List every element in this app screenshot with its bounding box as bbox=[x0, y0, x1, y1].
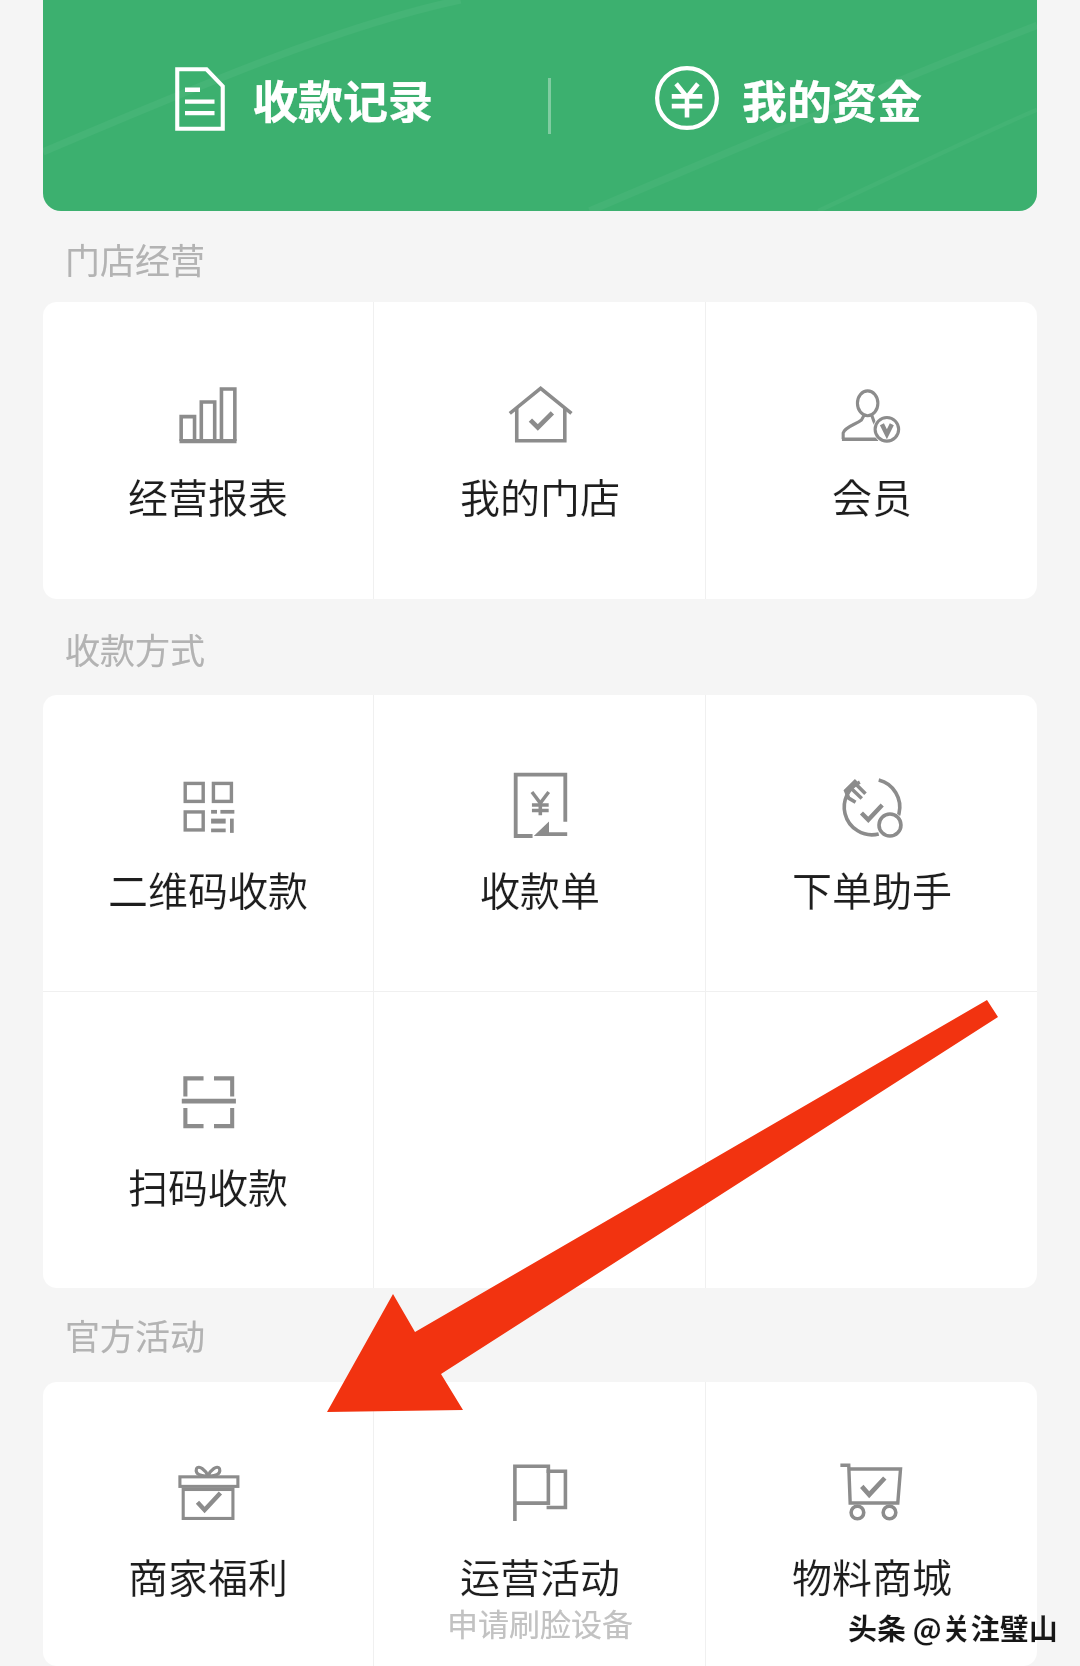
button[interactable]: 二维码收款 bbox=[43, 695, 373, 991]
button[interactable]: 会员 bbox=[706, 302, 1037, 599]
button[interactable]: 我的资金 bbox=[551, 0, 1037, 211]
staticText: 商家福利 bbox=[128, 1547, 288, 1605]
staticText: 收款记录 bbox=[253, 67, 434, 132]
staticText: 我的门店 bbox=[460, 467, 620, 525]
button[interactable]: 我的门店 bbox=[374, 302, 705, 599]
button[interactable]: 收款单 bbox=[374, 695, 705, 991]
button[interactable]: 运营活动 bbox=[374, 1382, 705, 1666]
staticText: 门店经营 bbox=[65, 233, 206, 284]
button[interactable]: 商家福利 bbox=[43, 1382, 373, 1666]
button[interactable]: 经营报表 bbox=[43, 302, 373, 599]
button[interactable]: 扫码收款 bbox=[43, 992, 373, 1288]
staticText: 收款方式 bbox=[65, 623, 206, 674]
staticText: 二维码收款 bbox=[108, 860, 308, 918]
staticText: 申请刷脸设备 bbox=[447, 1600, 633, 1645]
staticText: 下单助手 bbox=[792, 860, 952, 918]
button[interactable]: 下单助手 bbox=[706, 695, 1037, 991]
staticText: 头条 @关注璧山 bbox=[848, 1606, 1058, 1648]
staticText: 扫码收款 bbox=[128, 1157, 288, 1215]
staticText: 会员 bbox=[832, 467, 912, 525]
staticText: 运营活动 bbox=[460, 1547, 620, 1605]
staticText: 物料商城 bbox=[792, 1547, 952, 1605]
staticText: 经营报表 bbox=[128, 467, 288, 525]
staticText: 收款单 bbox=[480, 860, 600, 918]
button[interactable]: 物料商城 bbox=[706, 1382, 1037, 1666]
staticText: 我的资金 bbox=[742, 67, 923, 132]
button[interactable]: 收款记录 bbox=[43, 0, 548, 211]
staticText: 官方活动 bbox=[65, 1309, 206, 1360]
